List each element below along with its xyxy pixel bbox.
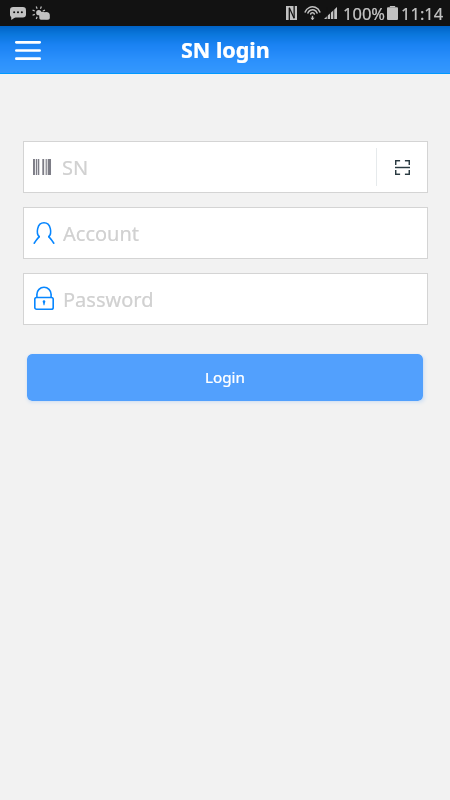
button[interactable]: Account: [23, 207, 428, 259]
staticText: 100%: [343, 2, 386, 24]
staticText: Account: [63, 220, 140, 247]
staticText: Password: [63, 286, 154, 313]
button[interactable]: SN: [23, 141, 428, 193]
staticText: Login: [205, 367, 245, 388]
staticText: SN: [62, 154, 89, 181]
button[interactable]: Scan barcode: [377, 142, 428, 192]
button[interactable]: Open navigation menu: [7, 29, 49, 71]
staticText: 11:14: [401, 2, 444, 24]
staticText: SN login: [181, 35, 270, 64]
button[interactable]: Password: [23, 273, 428, 325]
button[interactable]: Login: [27, 354, 423, 401]
